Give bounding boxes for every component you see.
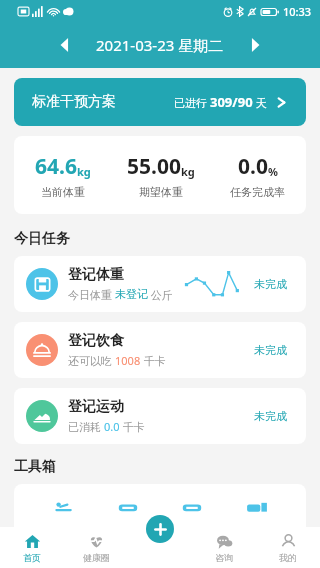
button[interactable]: 登记运动	[14, 388, 306, 444]
staticText: 2021-03-23 星期二	[96, 35, 224, 55]
button[interactable]: 健康圈	[64, 527, 128, 568]
staticText: 登记体重	[68, 266, 124, 284]
staticText: 健康圈	[83, 552, 110, 563]
staticText: 千卡	[141, 353, 166, 368]
staticText: 千卡	[120, 419, 145, 434]
staticText: 登记运动	[68, 398, 124, 416]
button[interactable]: 0.0	[209, 152, 306, 199]
button[interactable]: 登记体重	[14, 256, 306, 312]
staticText: 当前体重	[41, 185, 85, 199]
staticText: 今日任务	[14, 230, 70, 248]
staticText: 咨询	[215, 552, 233, 563]
staticText: 期望体重	[139, 185, 183, 199]
button[interactable]: 64.6	[14, 152, 112, 199]
button[interactable]: 首页	[0, 527, 64, 568]
staticText: 任务完成率	[230, 185, 285, 199]
staticText: 已进行	[174, 95, 210, 110]
button[interactable]: 55.00	[112, 152, 209, 199]
staticText: kg	[181, 164, 195, 179]
staticText: 天	[253, 95, 267, 110]
staticText: kg	[77, 164, 91, 179]
staticText: 首页	[23, 552, 41, 563]
staticText: 未完成	[254, 409, 294, 423]
button[interactable]: 登记饮食	[14, 322, 306, 378]
staticText: 0.0	[238, 152, 268, 181]
staticText: 10:33	[283, 4, 312, 19]
button[interactable]: 咨询	[192, 527, 256, 568]
staticText: 登记饮食	[68, 332, 124, 350]
staticText: 未完成	[254, 277, 294, 291]
staticText: 还可以吃	[68, 353, 115, 368]
staticText: 标准干预方案	[32, 93, 116, 111]
button[interactable]: Tool 3	[177, 498, 207, 528]
staticText: 公斤	[148, 287, 173, 302]
staticText: 55.00	[127, 152, 181, 181]
staticText: 今日体重	[68, 287, 115, 302]
staticText: 工具箱	[14, 458, 56, 476]
button[interactable]: Tool 2	[113, 498, 143, 528]
button[interactable]: 我的	[256, 527, 320, 568]
staticText: 我的	[279, 552, 297, 563]
staticText: 已消耗	[68, 419, 104, 434]
button[interactable]: Add	[146, 515, 174, 543]
button[interactable]: 标准干预方案	[14, 78, 306, 126]
staticText: 未登记	[115, 287, 148, 301]
staticText: 0.0	[104, 419, 120, 434]
staticText: 309/90	[210, 93, 253, 111]
staticText: 64.6	[35, 152, 77, 181]
button[interactable]: Tool 1	[48, 498, 78, 528]
button[interactable]: Tool 4	[242, 498, 272, 528]
staticText: 未完成	[254, 343, 294, 357]
staticText: 1008	[115, 353, 141, 368]
button[interactable]: Previous day	[48, 28, 82, 62]
button[interactable]: Next day	[238, 28, 272, 62]
staticText: %	[268, 164, 278, 179]
